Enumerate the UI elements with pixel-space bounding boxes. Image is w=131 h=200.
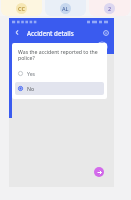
staticText: Yes xyxy=(27,70,36,77)
button[interactable]: Back xyxy=(12,27,23,38)
staticText: No xyxy=(27,85,35,92)
button[interactable]: 2 xyxy=(89,0,130,16)
button[interactable]: Yes xyxy=(15,67,104,80)
button[interactable]: No xyxy=(15,82,104,95)
button[interactable]: Next xyxy=(94,167,104,177)
staticText: Accident details xyxy=(27,29,74,37)
staticText: CC xyxy=(18,5,25,12)
staticText: Was the accident reported to the police? xyxy=(18,48,99,62)
button[interactable]: Help xyxy=(96,41,108,53)
button[interactable]: Info xyxy=(100,27,111,38)
staticText: 2 xyxy=(108,5,112,12)
staticText: AL xyxy=(62,5,69,12)
button[interactable]: AL xyxy=(45,0,86,16)
button[interactable]: CC xyxy=(1,0,42,16)
